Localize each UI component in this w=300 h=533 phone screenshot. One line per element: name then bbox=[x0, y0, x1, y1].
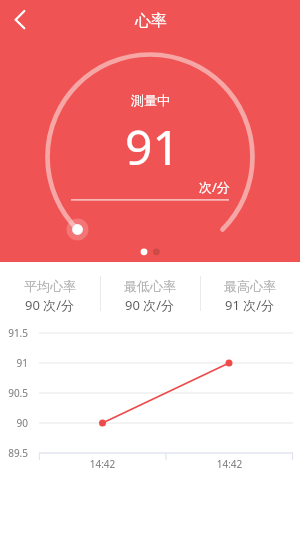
staticText: 14:42 bbox=[76, 457, 129, 471]
staticText: 91 bbox=[125, 114, 180, 179]
staticText: 最高心率 bbox=[224, 278, 276, 294]
staticText: 91 bbox=[0, 356, 28, 370]
staticText: 89.5 bbox=[0, 446, 28, 460]
button[interactable]: Back bbox=[0, 0, 38, 38]
button[interactable]: Page 1 bbox=[138, 246, 150, 258]
button[interactable]: 最高心率 bbox=[200, 262, 300, 314]
staticText: 90.5 bbox=[0, 386, 28, 400]
staticText: 心率 bbox=[135, 11, 167, 31]
staticText: 最低心率 bbox=[124, 278, 176, 294]
staticText: 91 次/分 bbox=[225, 296, 275, 314]
staticText: 14:42 bbox=[203, 457, 256, 471]
staticText: 測量中 bbox=[131, 92, 170, 108]
staticText: 平均心率 bbox=[24, 278, 76, 294]
button[interactable]: Page 2 bbox=[150, 246, 162, 258]
staticText: 90 次/分 bbox=[25, 296, 75, 314]
staticText: 90 bbox=[0, 416, 28, 430]
staticText: 90 次/分 bbox=[125, 296, 175, 314]
button[interactable]: 平均心率 bbox=[0, 262, 100, 314]
staticText: 91.5 bbox=[0, 326, 28, 340]
staticText: 次/分 bbox=[199, 178, 230, 196]
button[interactable]: 最低心率 bbox=[100, 262, 200, 314]
